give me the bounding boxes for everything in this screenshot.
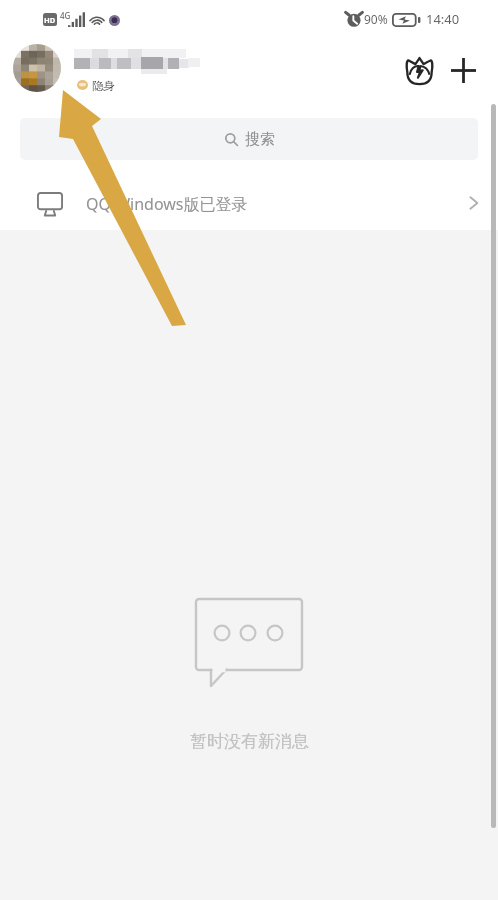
staticText: 暂时没有新消息 [190,731,309,752]
button[interactable]: QQ mascot [401,52,437,88]
button[interactable]: 搜索 [20,118,478,160]
button[interactable]: Add [445,52,481,88]
staticText: HD [44,15,56,25]
staticText: 搜索 [245,130,275,149]
staticText: 4G [60,10,71,21]
staticText: 90% [364,11,388,27]
staticText: 隐身 [92,79,115,93]
staticText: QQ Windows版已登录 [86,193,248,215]
staticText: 14:40 [426,10,460,28]
button[interactable]: Profile avatar [13,44,61,92]
button[interactable]: QQ Windows版已登录 [0,178,498,230]
